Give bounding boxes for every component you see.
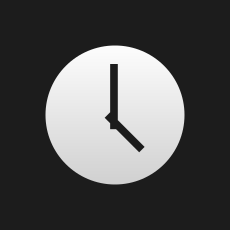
button[interactable]: Clock: [45, 45, 184, 184]
